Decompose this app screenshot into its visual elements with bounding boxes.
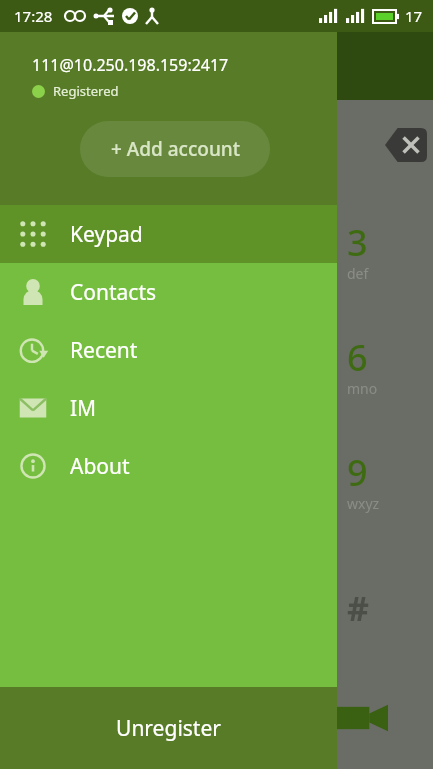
button[interactable]: Keypad (0, 205, 337, 263)
button[interactable]: Video call (336, 700, 388, 736)
button[interactable]: 6 (345, 333, 431, 419)
staticText: Unregister (116, 714, 221, 743)
button[interactable]: Backspace (385, 128, 427, 162)
staticText: wxyz (347, 494, 380, 513)
staticText: 111@10.250.198.159:2417 (32, 54, 229, 76)
button[interactable]: IM (0, 379, 337, 437)
staticText: Recent (70, 336, 138, 365)
button[interactable]: 3 (345, 218, 431, 304)
staticText: 3 (347, 218, 368, 267)
staticText: def (347, 264, 369, 283)
staticText: + Add account (111, 136, 240, 162)
button[interactable]: + Add account (80, 121, 270, 177)
staticText: Keypad (70, 220, 143, 249)
staticText: 9 (347, 448, 368, 497)
staticText: # (347, 585, 369, 631)
staticText: 17:28 (14, 6, 53, 26)
staticText: mno (347, 379, 378, 398)
staticText: Contacts (70, 278, 157, 307)
button[interactable]: Unregister (0, 687, 337, 769)
button[interactable]: Contacts (0, 263, 337, 321)
button[interactable]: Recent (0, 321, 337, 379)
staticText: 17 (405, 6, 423, 26)
button[interactable]: About (0, 437, 337, 495)
staticText: Registered (53, 82, 119, 100)
button[interactable]: 9 (345, 448, 431, 534)
staticText: 6 (347, 333, 368, 382)
staticText: About (70, 452, 130, 481)
staticText: IM (70, 394, 97, 423)
